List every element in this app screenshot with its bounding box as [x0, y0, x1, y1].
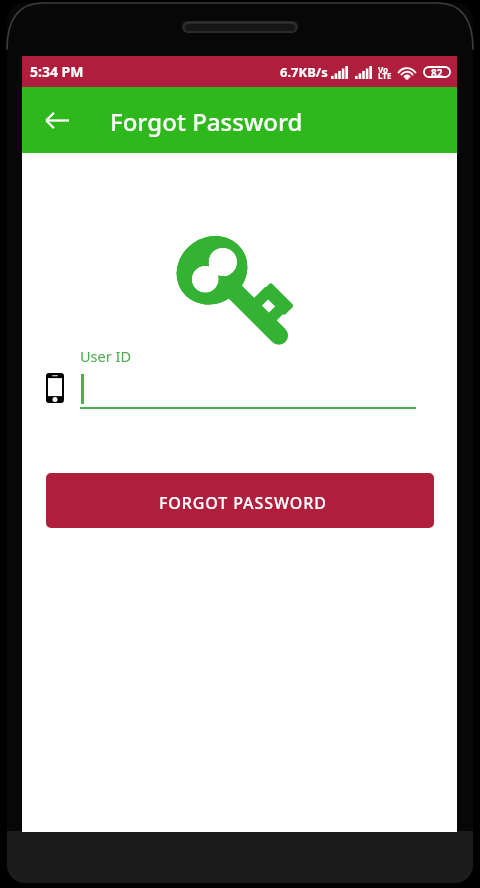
staticText: User ID: [80, 346, 131, 366]
staticText: Vo: [378, 64, 389, 75]
staticText: LTE: [378, 70, 392, 81]
staticText: Forgot Password: [110, 105, 303, 138]
staticText: 82: [431, 66, 443, 78]
staticText: FORGOT PASSWORD: [159, 492, 327, 514]
button[interactable]: [80, 354, 416, 409]
staticText: 6.7KB/s: [280, 63, 328, 81]
button[interactable]: Navigate back: [33, 97, 80, 144]
button[interactable]: FORGOT PASSWORD: [46, 473, 434, 528]
staticText: 5:34 PM: [30, 62, 84, 81]
